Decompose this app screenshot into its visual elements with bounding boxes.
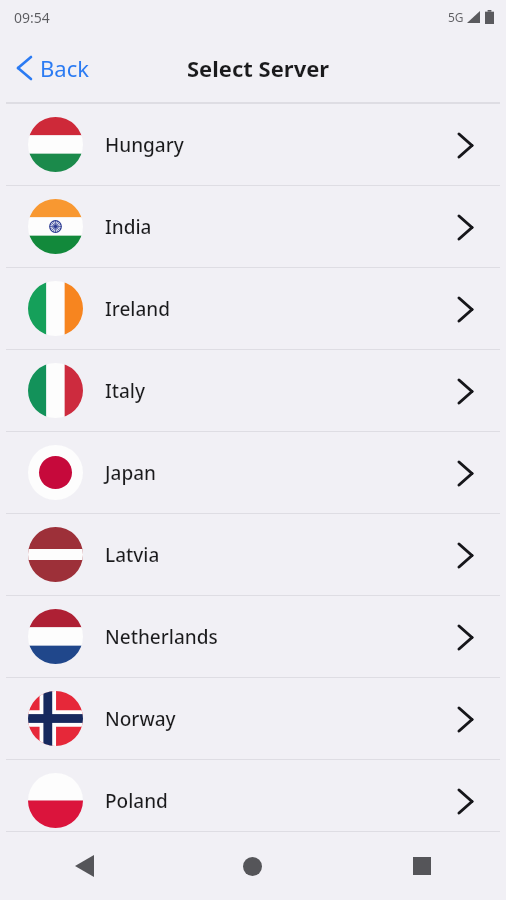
other: Open Japan	[438, 446, 492, 500]
button[interactable]: Poland	[0, 760, 506, 841]
staticText: Hungary	[105, 132, 184, 158]
staticText: Japan	[105, 460, 156, 486]
button[interactable]: Norway	[0, 678, 506, 759]
button[interactable]: Netherlands	[0, 596, 506, 677]
button[interactable]: Japan	[0, 432, 506, 513]
other: Open Poland	[438, 774, 492, 828]
other: Open India	[438, 200, 492, 254]
staticText: Netherlands	[105, 624, 218, 650]
staticText: Poland	[105, 788, 168, 814]
other: Open Netherlands	[438, 610, 492, 664]
button[interactable]: Ireland	[0, 268, 506, 349]
other: Open Norway	[438, 692, 492, 746]
other: Open Ireland	[438, 282, 492, 336]
button[interactable]: Back	[0, 832, 168, 900]
button[interactable]: Italy	[0, 350, 506, 431]
staticText: Norway	[105, 706, 176, 732]
other: Open Hungary	[438, 118, 492, 172]
other: Open Italy	[438, 364, 492, 418]
staticText: Ireland	[105, 296, 170, 322]
button[interactable]: Hungary	[0, 104, 506, 185]
staticText: 5G	[448, 9, 464, 25]
staticText: Latvia	[105, 542, 160, 568]
staticText: Italy	[105, 378, 146, 404]
staticText: Back	[40, 53, 89, 83]
button[interactable]: Recent apps	[337, 832, 506, 900]
button[interactable]: Back	[0, 45, 103, 91]
staticText: 09:54	[14, 8, 50, 27]
button[interactable]: Latvia	[0, 514, 506, 595]
other: Open Latvia	[438, 528, 492, 582]
button[interactable]: Home	[168, 832, 337, 900]
staticText: India	[105, 214, 152, 240]
button[interactable]: India	[0, 186, 506, 267]
staticText: Select Server	[187, 53, 330, 83]
